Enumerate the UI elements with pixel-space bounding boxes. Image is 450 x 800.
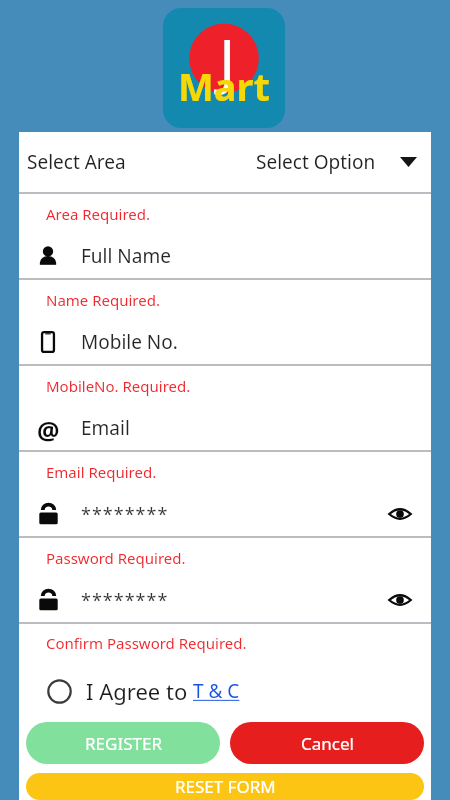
- staticText: RESET FORM: [175, 775, 276, 798]
- staticText: Name Required.: [46, 290, 160, 310]
- button[interactable]: REGISTER: [26, 722, 220, 764]
- staticText: MobileNo. Required.: [46, 376, 191, 396]
- staticText: Area Required.: [46, 204, 151, 224]
- button[interactable]: ********: [19, 578, 431, 622]
- staticText: Confirm Password Required.: [46, 633, 247, 653]
- staticText: Password Required.: [46, 548, 186, 568]
- button[interactable]: Cancel: [230, 722, 424, 764]
- staticText: ********: [81, 588, 169, 613]
- staticText: Mart: [178, 60, 271, 112]
- button[interactable]: Show password: [385, 585, 415, 615]
- staticText: ********: [81, 502, 169, 527]
- button[interactable]: Show password: [385, 499, 415, 529]
- button[interactable]: I Agree to: [19, 662, 431, 720]
- button[interactable]: RESET FORM: [26, 773, 424, 800]
- staticText: Email Required.: [46, 462, 157, 482]
- staticText: @: [37, 413, 60, 443]
- staticText: I Agree to: [86, 676, 193, 706]
- staticText: J: [219, 19, 236, 101]
- button[interactable]: @: [19, 406, 431, 450]
- staticText: Select Area: [27, 149, 126, 175]
- button[interactable]: Select Area: [19, 132, 431, 192]
- button[interactable]: T & C: [193, 678, 240, 704]
- button[interactable]: ********: [19, 492, 431, 536]
- staticText: Select Option: [256, 149, 376, 175]
- button[interactable]: JMart logo: [163, 8, 285, 128]
- button[interactable]: Full Name: [19, 234, 431, 278]
- button[interactable]: Mobile No.: [19, 320, 431, 364]
- staticText: Mobile No.: [81, 329, 178, 355]
- staticText: Cancel: [301, 732, 354, 755]
- staticText: Email: [81, 415, 130, 441]
- staticText: Full Name: [81, 243, 171, 269]
- staticText: REGISTER: [85, 732, 162, 755]
